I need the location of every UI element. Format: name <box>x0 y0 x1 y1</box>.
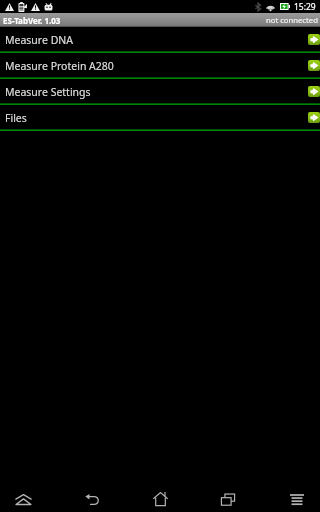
button[interactable]: Collapse keyboard <box>6 486 40 512</box>
staticText: 15:29 <box>294 1 316 13</box>
staticText: ES-TabVer. 1.03 <box>3 15 61 26</box>
button[interactable]: Measure Protein A280 <box>0 53 320 79</box>
button[interactable]: Back <box>75 486 109 512</box>
button[interactable]: Menu <box>280 486 314 512</box>
button[interactable]: Recent apps <box>211 486 245 512</box>
staticText: Measure Protein A280 <box>5 59 114 73</box>
button[interactable]: Files <box>0 105 320 131</box>
button[interactable]: Home <box>143 486 177 512</box>
staticText: not connected <box>266 15 318 25</box>
button[interactable]: Measure Settings <box>0 79 320 105</box>
staticText: Measure DNA <box>5 33 73 47</box>
staticText: Measure Settings <box>5 85 91 99</box>
staticText: Files <box>5 111 27 125</box>
button[interactable]: Measure DNA <box>0 27 320 53</box>
